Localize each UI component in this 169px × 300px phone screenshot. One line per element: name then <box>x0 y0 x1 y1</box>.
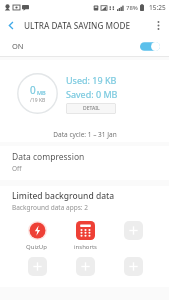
button[interactable]: inshorts <box>61 219 109 251</box>
staticText: inshorts <box>74 243 97 251</box>
staticText: QuizUp <box>26 243 47 251</box>
button[interactable]: Add app <box>61 255 109 287</box>
staticText: MB <box>37 89 46 96</box>
button[interactable]: Add app <box>12 255 61 287</box>
staticText: 0 <box>30 83 36 97</box>
button[interactable]: Data compression <box>0 146 169 180</box>
staticText: Background data apps: 2 <box>12 203 88 212</box>
staticText: /19 KB <box>30 97 46 104</box>
button[interactable]: DETAIL <box>66 103 116 114</box>
staticText: ULTRA DATA SAVING MODE <box>24 20 131 31</box>
button[interactable]: Back <box>0 14 22 36</box>
staticText: Saved: 0 MB <box>66 88 118 100</box>
staticText: Used: 19 KB <box>66 74 117 86</box>
button[interactable]: Add app <box>109 255 157 287</box>
staticText: Data compression <box>12 151 85 163</box>
button[interactable]: More options <box>147 14 169 36</box>
staticText: Limited background data <box>12 190 115 202</box>
staticText: 78% <box>126 4 138 12</box>
staticText: 15:25 <box>149 3 166 12</box>
staticText: ON <box>12 41 24 51</box>
button[interactable]: ON <box>0 36 169 56</box>
staticText: Data cycle: 1 – 31 Jan <box>53 130 117 139</box>
staticText: Off <box>12 164 22 173</box>
button[interactable]: Add app <box>109 219 157 251</box>
staticText: DETAIL <box>83 105 100 112</box>
button[interactable]: QuizUp <box>12 219 61 251</box>
